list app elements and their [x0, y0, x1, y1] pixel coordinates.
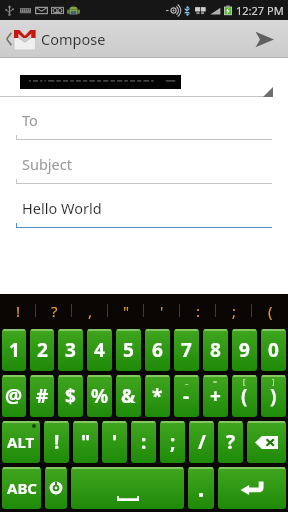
button[interactable]: 6 [145, 329, 170, 371]
staticText: - [183, 383, 190, 409]
staticText: " [123, 301, 130, 321]
staticText: ' [112, 429, 118, 455]
button[interactable]: ! [0, 294, 36, 327]
staticText: ' [160, 301, 164, 321]
button[interactable]: ! [44, 421, 69, 463]
button[interactable]: ; [160, 421, 185, 463]
staticText: & [121, 383, 136, 409]
button[interactable]: @ [2, 375, 26, 417]
staticText: ; [170, 429, 176, 455]
staticText: = [213, 377, 218, 387]
staticText: ( [268, 301, 273, 321]
button[interactable] [0, 58, 288, 96]
staticText: Subject [22, 154, 72, 174]
button[interactable]: : [180, 294, 216, 327]
button[interactable]: 2 [30, 329, 54, 371]
button[interactable]: 1 [2, 329, 26, 371]
button[interactable]: : [131, 421, 156, 463]
button[interactable]: 8 [203, 329, 228, 371]
staticText: 2 [37, 337, 48, 363]
button[interactable]: / [189, 421, 214, 463]
button[interactable]: 7 [174, 329, 199, 371]
staticText: " [81, 429, 91, 455]
staticText: $ [65, 383, 76, 409]
staticText: / [198, 429, 206, 455]
button[interactable]: ( [252, 294, 288, 327]
staticText: : [141, 429, 147, 455]
button[interactable]: Subject [0, 140, 288, 184]
staticText: ! [54, 429, 60, 455]
staticText: % [91, 383, 109, 409]
button[interactable]: Backspace [247, 421, 286, 463]
staticText: ABC [7, 478, 37, 498]
button[interactable]: & [116, 375, 141, 417]
staticText: # [36, 383, 49, 409]
button[interactable]: ( [232, 375, 257, 417]
button[interactable]: ) [261, 375, 286, 417]
button[interactable]: " [108, 294, 144, 327]
staticText: : [196, 301, 201, 321]
button[interactable]: ? [36, 294, 72, 327]
button[interactable]: 0 [261, 329, 286, 371]
button[interactable]: + [203, 375, 228, 417]
button[interactable]: 3 [58, 329, 83, 371]
staticText: 6 [152, 337, 163, 363]
button[interactable]: - [174, 375, 199, 417]
button[interactable]: $ [58, 375, 83, 417]
staticText: ( [241, 383, 248, 409]
button[interactable]: 4 [87, 329, 112, 371]
button[interactable]: Settings [45, 467, 67, 509]
button[interactable]: 5 [116, 329, 141, 371]
staticText: 9 [239, 337, 250, 363]
staticText: ALT [7, 432, 35, 452]
button[interactable]: 9 [232, 329, 257, 371]
button[interactable]: ? [218, 421, 243, 463]
staticText: ? [226, 429, 236, 455]
staticText: _ [185, 377, 189, 387]
button[interactable]: Period [188, 467, 214, 509]
staticText: 8 [210, 337, 221, 363]
staticText: Hello World [22, 198, 102, 218]
staticText: 1 [9, 337, 20, 363]
staticText: @ [5, 383, 23, 409]
button[interactable]: % [87, 375, 112, 417]
staticText: , [88, 301, 93, 321]
staticText: ) [270, 383, 277, 409]
button[interactable]: Send [240, 20, 288, 58]
staticText: 12:27 PM [236, 3, 284, 18]
button[interactable]: To [0, 96, 288, 140]
staticText: [ [243, 377, 246, 387]
staticText: + [210, 383, 221, 409]
button[interactable]: ALT [2, 421, 40, 463]
staticText: 0 [268, 337, 279, 363]
button[interactable]: Enter [218, 467, 286, 509]
staticText: 4 [94, 337, 105, 363]
button[interactable]: " [73, 421, 98, 463]
staticText: Compose [41, 29, 106, 49]
button[interactable]: Compose [0, 20, 116, 58]
button[interactable]: Hello World [0, 184, 288, 228]
staticText: ! [16, 301, 21, 321]
button[interactable]: Space [71, 467, 184, 509]
button[interactable]: * [145, 375, 170, 417]
staticText: ? [51, 301, 58, 321]
button[interactable]: # [30, 375, 54, 417]
staticText: 7 [181, 337, 192, 363]
button[interactable]: ' [144, 294, 180, 327]
staticText: ; [232, 301, 237, 321]
button[interactable]: ; [216, 294, 252, 327]
staticText: To [22, 110, 38, 130]
button[interactable]: ABC [2, 467, 41, 509]
staticText: 5 [123, 337, 134, 363]
staticText: 3 [65, 337, 76, 363]
staticText: * [152, 383, 163, 409]
button[interactable]: ' [102, 421, 127, 463]
button[interactable]: , [72, 294, 108, 327]
staticText: ] [272, 377, 275, 387]
